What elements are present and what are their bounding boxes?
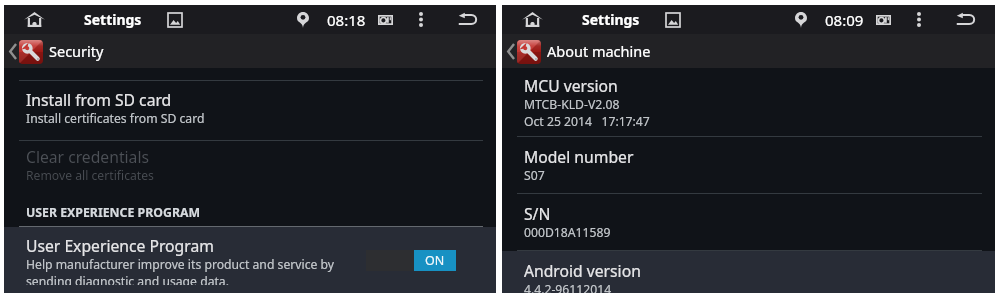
button[interactable]: Android version (502, 251, 995, 293)
button[interactable]: About machine (502, 34, 995, 68)
button[interactable]: Home (19, 5, 49, 34)
staticText: 08:09 (825, 10, 864, 30)
staticText: Security (49, 41, 104, 61)
staticText: 4.4.2-96112014 (524, 281, 612, 293)
staticText: Clear credentials (26, 146, 149, 167)
button[interactable]: Home (517, 5, 547, 34)
button[interactable]: Camera (871, 5, 895, 34)
staticText: Install from SD card (26, 89, 172, 110)
staticText: MCU version (524, 75, 618, 96)
staticText: Help manufacturer improve its product an… (26, 256, 335, 273)
staticText: sending diagnostic and usage data. (26, 273, 229, 285)
staticText: 000D18A11589 (524, 224, 611, 241)
button[interactable]: Model number (502, 137, 995, 193)
staticText: S07 (524, 167, 545, 184)
button[interactable]: Install from SD card (4, 81, 496, 140)
button[interactable]: More options (909, 5, 929, 34)
button[interactable]: S/N (502, 194, 995, 250)
staticText: USER EXPERIENCE PROGRAM (26, 204, 201, 221)
button[interactable]: Location (790, 5, 812, 34)
staticText: Remove all certificates (26, 167, 154, 184)
staticText: Oct 25 2014 17:17:47 (524, 113, 650, 130)
button[interactable]: Security (4, 34, 496, 68)
button[interactable]: Camera (373, 5, 397, 34)
staticText: Settings (582, 10, 640, 29)
staticText: Model number (524, 146, 634, 167)
button[interactable]: Back (453, 5, 481, 34)
staticText: Settings (84, 10, 142, 29)
button[interactable]: Clear credentials (4, 141, 496, 194)
staticText: 08:18 (327, 10, 366, 30)
button[interactable]: Gallery (660, 5, 686, 34)
staticText: Android version (524, 260, 641, 281)
staticText: About machine (547, 41, 651, 61)
staticText: S/N (524, 203, 551, 224)
button[interactable]: MCU version (502, 68, 995, 136)
button[interactable]: Gallery (162, 5, 188, 34)
staticText: Install certificates from SD card (26, 110, 205, 127)
button[interactable]: User Experience Program (4, 227, 496, 293)
button[interactable]: More options (411, 5, 431, 34)
staticText: ON (425, 252, 445, 269)
staticText: User Experience Program (26, 235, 214, 256)
button[interactable]: Back (951, 5, 979, 34)
button[interactable]: Location (292, 5, 314, 34)
button[interactable]: User Experience Program toggle (366, 250, 456, 271)
staticText: MTCB-KLD-V2.08 (524, 96, 620, 113)
